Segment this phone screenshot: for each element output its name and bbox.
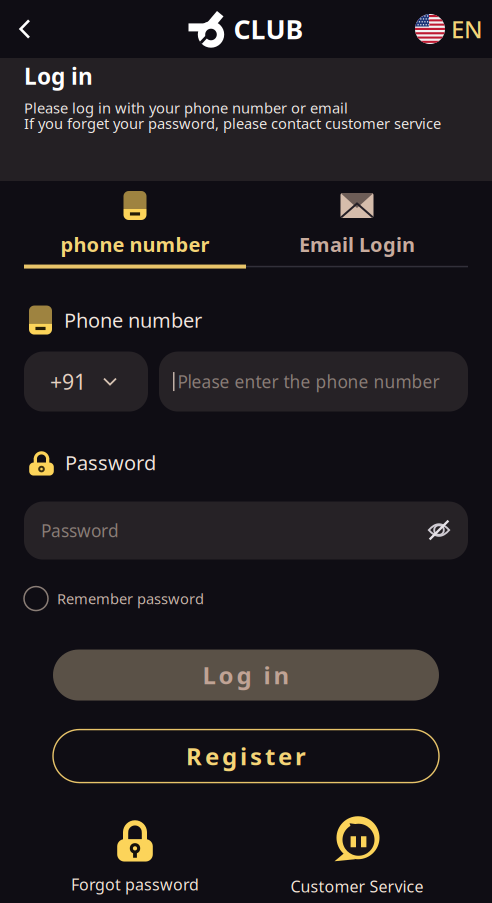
- button[interactable]: Show password: [422, 519, 451, 542]
- staticText: Email Login: [299, 231, 415, 258]
- button[interactable]: phone number: [24, 181, 246, 265]
- button[interactable]: Log in: [53, 650, 439, 701]
- staticText: Password: [65, 449, 156, 476]
- staticText: EN: [451, 13, 483, 45]
- button[interactable]: Email Login: [246, 181, 468, 265]
- staticText: Please enter the phone number: [177, 370, 439, 393]
- staticText: Remember password: [57, 589, 204, 608]
- button[interactable]: +91: [24, 352, 148, 412]
- staticText: Please log in with your phone number or …: [24, 98, 348, 118]
- button[interactable]: Back: [0, 1, 47, 57]
- staticText: CLUB: [233, 11, 303, 47]
- staticText: Log in: [24, 61, 93, 91]
- staticText: Forgot password: [71, 874, 199, 895]
- staticText: Password: [41, 519, 119, 542]
- button[interactable]: Register: [53, 730, 439, 783]
- button[interactable]: EN: [415, 0, 492, 58]
- staticText: Log in: [202, 659, 289, 691]
- button[interactable]: Remember password: [24, 580, 204, 618]
- staticText: phone number: [60, 231, 209, 258]
- staticText: Customer Service: [290, 876, 423, 897]
- staticText: If you forget your password, please cont…: [24, 114, 441, 133]
- button[interactable]: Customer Service: [246, 816, 468, 897]
- button[interactable]: Forgot password: [24, 818, 246, 895]
- staticText: Phone number: [64, 307, 202, 333]
- staticText: +91: [50, 367, 86, 396]
- staticText: Register: [186, 740, 306, 772]
